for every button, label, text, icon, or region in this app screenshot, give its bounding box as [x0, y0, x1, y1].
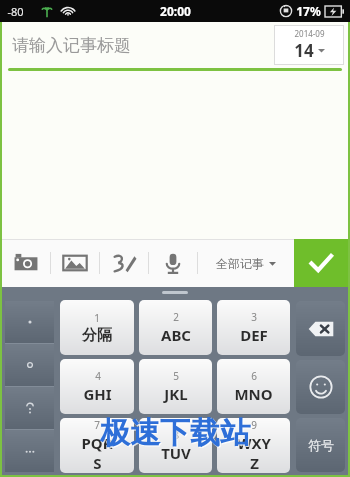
staticText: 14: [294, 39, 314, 62]
button[interactable]: Voice: [149, 239, 197, 287]
staticText: 7: [94, 418, 100, 432]
staticText: JKL: [164, 384, 188, 404]
button[interactable]: 8: [139, 418, 212, 473]
staticText: 2: [173, 310, 179, 324]
staticText: ABC: [161, 325, 191, 345]
staticText: 5: [173, 369, 179, 383]
staticText: 6: [251, 369, 257, 383]
button[interactable]: Handwriting: [100, 239, 148, 287]
button[interactable]: 符号: [296, 418, 345, 472]
staticText: WXY: [237, 433, 271, 453]
button[interactable]: 5: [139, 359, 212, 414]
button[interactable]: 1: [60, 300, 134, 355]
staticText: DEF: [240, 325, 268, 345]
button[interactable]: Backspace: [296, 301, 345, 356]
button[interactable]: 2014-09: [274, 25, 344, 65]
staticText: S: [93, 453, 102, 473]
button[interactable]: 2: [139, 300, 212, 355]
button[interactable]: Symbol key: [5, 343, 54, 386]
button[interactable]: 6: [217, 359, 290, 414]
button[interactable]: Gallery: [51, 239, 99, 287]
button[interactable]: 4: [60, 359, 134, 414]
button[interactable]: 全部记事: [198, 239, 294, 287]
button[interactable]: 3: [217, 300, 290, 355]
staticText: 请输入记事标题: [12, 35, 131, 56]
staticText: 分隔: [82, 326, 112, 345]
staticText: Z: [250, 453, 259, 473]
staticText: MNO: [234, 384, 273, 404]
staticText: -80: [7, 4, 24, 19]
staticText: 8: [173, 428, 179, 442]
button[interactable]: Save: [294, 239, 348, 287]
staticText: PQR: [81, 433, 113, 453]
button[interactable]: 9: [217, 418, 290, 473]
button[interactable]: Symbol key: [5, 429, 54, 472]
staticText: 2014-09: [294, 28, 325, 39]
staticText: 极速下载站: [101, 415, 251, 453]
staticText: 17%: [296, 3, 321, 19]
staticText: 4: [95, 369, 101, 383]
button[interactable]: Symbol key: [5, 301, 54, 343]
button[interactable]: Emoji: [296, 360, 345, 414]
button[interactable]: 7: [60, 418, 134, 473]
staticText: 9: [251, 418, 257, 432]
staticText: TUV: [161, 443, 191, 463]
staticText: 3: [251, 310, 257, 324]
button[interactable]: Symbol key: [5, 386, 54, 429]
staticText: 符号: [308, 437, 334, 453]
staticText: 20:00: [160, 3, 191, 19]
staticText: 极速下载站: [100, 414, 250, 452]
staticText: 1: [94, 311, 100, 325]
button[interactable]: Camera: [2, 239, 50, 287]
staticText: 全部记事: [216, 256, 264, 271]
staticText: GHI: [83, 384, 112, 404]
